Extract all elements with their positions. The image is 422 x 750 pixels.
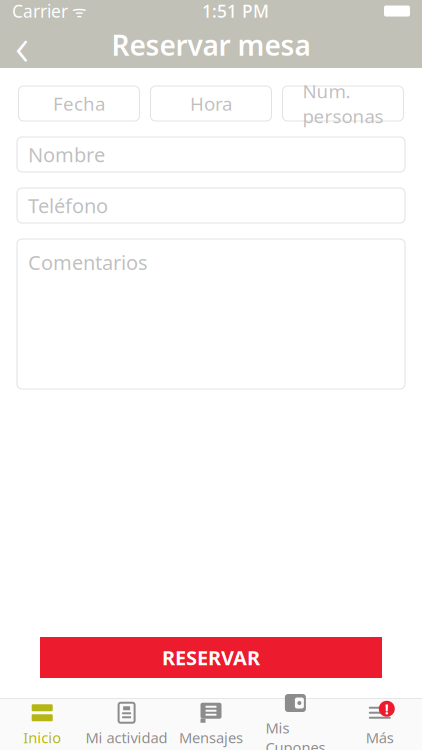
staticText: Hora xyxy=(190,91,232,116)
staticText: ‹ xyxy=(15,10,29,80)
staticText: Num. personas xyxy=(302,79,383,128)
staticText: Inicio xyxy=(23,728,61,747)
staticText: RESERVAR xyxy=(162,644,260,671)
staticText: ! xyxy=(385,699,389,718)
button[interactable]: Mis Cupones xyxy=(253,699,338,750)
button[interactable]: Teléfono xyxy=(17,188,405,223)
staticText: Teléfono xyxy=(28,192,108,219)
button[interactable]: Hora xyxy=(150,86,271,121)
button[interactable]: RESERVAR xyxy=(40,637,382,678)
staticText: Fecha xyxy=(53,91,105,116)
staticText: Nombre xyxy=(28,141,105,168)
staticText: Reservar mesa xyxy=(111,26,310,64)
button[interactable]: Mensajes xyxy=(169,699,253,750)
button[interactable]: Back xyxy=(0,23,44,67)
button[interactable]: ! xyxy=(338,699,422,750)
button[interactable]: Comentarios xyxy=(17,239,405,389)
staticText: Comentarios xyxy=(28,249,148,276)
button[interactable]: Mi actividad xyxy=(84,699,169,750)
staticText: Más xyxy=(366,728,394,747)
button[interactable]: Num. personas xyxy=(282,86,403,121)
staticText: Carrier xyxy=(12,0,68,22)
button[interactable]: Fecha xyxy=(18,86,139,121)
staticText: Mis Cupones xyxy=(265,718,325,750)
staticText: Mi actividad xyxy=(86,728,168,747)
staticText: 1:51 PM xyxy=(202,0,269,22)
button[interactable]: Inicio xyxy=(0,699,84,750)
staticText: Mensajes xyxy=(179,728,243,747)
staticText: ᯤ xyxy=(68,0,87,22)
button[interactable]: Nombre xyxy=(17,137,405,172)
